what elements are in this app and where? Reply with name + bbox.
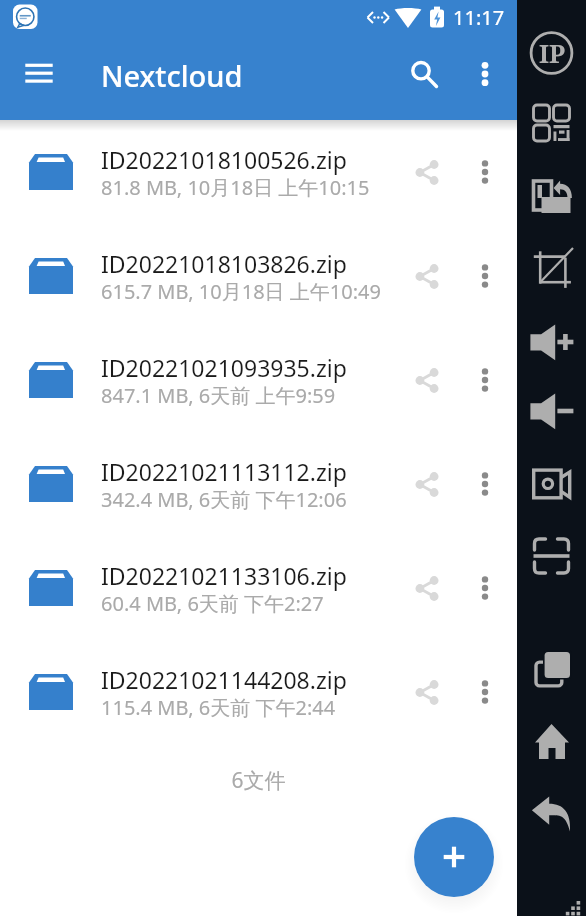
button[interactable]: ID20221021113112.zip — [0, 432, 517, 536]
button[interactable]: Move — [517, 165, 586, 223]
staticText: 847.1 MB, 6天前 上午9:59 — [101, 382, 336, 409]
button[interactable]: ID20221018103826.zip — [0, 224, 517, 328]
button[interactable]: More options — [463, 56, 507, 100]
button[interactable]: Add — [414, 817, 494, 897]
button[interactable]: Crop — [517, 239, 586, 297]
button[interactable]: Copy — [517, 635, 586, 693]
staticText: Nextcloud — [101, 56, 243, 95]
button[interactable]: ID20221018100526.zip — [0, 120, 517, 224]
staticText: ID20221021113112.zip — [101, 456, 347, 487]
button[interactable]: More options — [463, 566, 507, 610]
staticText: ID20221021133106.zip — [101, 560, 347, 591]
staticText: 6文件 — [0, 766, 517, 795]
staticText: IP — [539, 36, 565, 70]
button[interactable]: Widgets — [517, 94, 586, 152]
staticText: 115.4 MB, 6天前 下午2:44 — [101, 694, 336, 721]
button[interactable]: Share — [405, 670, 450, 715]
button[interactable]: ID20221021144208.zip — [0, 640, 517, 744]
staticText: 11:17 — [453, 4, 505, 31]
staticText: ID20221018100526.zip — [101, 144, 347, 175]
button[interactable]: More options — [463, 150, 507, 194]
button[interactable]: IP address — [517, 24, 586, 82]
button[interactable]: More options — [463, 254, 507, 298]
button[interactable]: Share — [405, 254, 450, 299]
button[interactable]: Share — [405, 150, 450, 195]
staticText: 81.8 MB, 10月18日 上午10:15 — [101, 174, 370, 201]
button[interactable]: Share — [405, 358, 450, 403]
staticText: ID20221021093935.zip — [101, 352, 347, 383]
button[interactable]: Record video — [517, 455, 586, 513]
staticText: ID20221018103826.zip — [101, 248, 347, 279]
button[interactable]: Back — [517, 782, 586, 840]
button[interactable]: Share — [405, 566, 450, 611]
button[interactable]: Volume up — [517, 313, 586, 371]
button[interactable]: ID20221021093935.zip — [0, 328, 517, 432]
button[interactable]: More options — [463, 670, 507, 714]
button[interactable]: Scan — [517, 527, 586, 585]
button[interactable]: More options — [463, 462, 507, 506]
staticText: 60.4 MB, 6天前 下午2:27 — [101, 590, 324, 617]
button[interactable]: Volume down — [517, 382, 586, 440]
staticText: ID20221021144208.zip — [101, 664, 347, 695]
staticText: 615.7 MB, 10月18日 上午10:49 — [101, 278, 381, 305]
button[interactable]: Share — [405, 462, 450, 507]
button[interactable]: Home — [517, 713, 586, 771]
button[interactable]: ID20221021133106.zip — [0, 536, 517, 640]
button[interactable]: More options — [463, 358, 507, 402]
button[interactable]: Open navigation menu — [13, 52, 65, 104]
staticText: 342.4 MB, 6天前 下午12:06 — [101, 486, 347, 513]
button[interactable]: Search — [396, 53, 446, 103]
